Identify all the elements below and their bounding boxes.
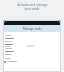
- button[interactable]: App bar: [3, 20, 61, 25]
- staticText: your cards: [24, 7, 40, 11]
- staticText: Activate and manage: [17, 3, 48, 7]
- staticText: Manage cards: [23, 27, 42, 31]
